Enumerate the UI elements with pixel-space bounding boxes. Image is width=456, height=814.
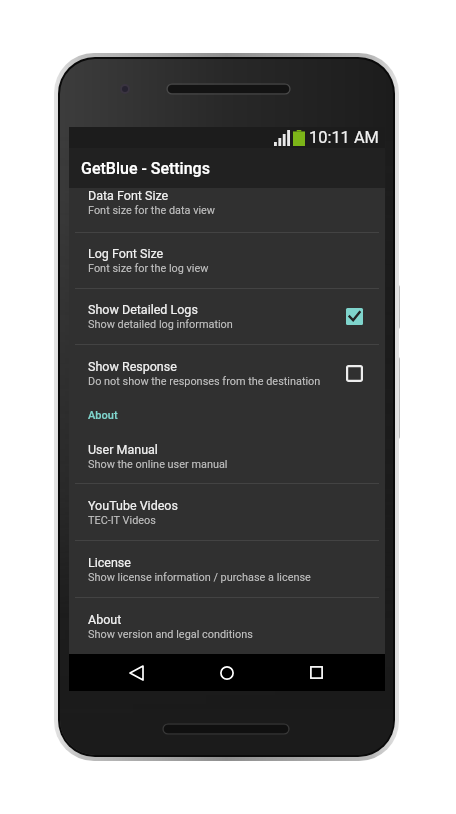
button[interactable]: Back [112,654,160,691]
button[interactable]: Data Font Size [69,188,385,232]
staticText: GetBlue - Settings [81,159,210,178]
staticText: Show license information / purchase a li… [88,571,311,584]
staticText: Show the online user manual [88,458,228,471]
button[interactable]: About [69,598,385,654]
staticText: Show detailed log information [88,318,233,331]
staticText: Data Font Size [88,188,169,203]
staticText: About [88,409,118,422]
staticText: YouTube Videos [88,498,178,513]
staticText: About [88,612,122,627]
button[interactable]: Show Detailed Logs [69,289,385,344]
button[interactable]: License [69,541,385,597]
button[interactable]: Show Response [69,345,385,401]
staticText: Do not show the responses from the desti… [88,375,321,388]
staticText: Font size for the log view [88,262,209,275]
staticText: Show version and legal conditions [88,628,253,641]
staticText: Show Response [88,359,177,374]
staticText: 10:11 AM [309,128,379,147]
button[interactable]: Home [203,654,251,691]
staticText: TEC-IT Videos [88,514,156,527]
button[interactable]: Log Font Size [69,233,385,288]
button[interactable]: YouTube Videos [69,484,385,540]
staticText: Log Font Size [88,246,164,261]
button[interactable]: User Manual [69,429,385,483]
button[interactable]: Recent apps [292,654,340,691]
staticText: Show Detailed Logs [88,302,198,317]
staticText: License [88,555,131,570]
staticText: Font size for the data view [88,204,216,217]
staticText: User Manual [88,442,158,457]
